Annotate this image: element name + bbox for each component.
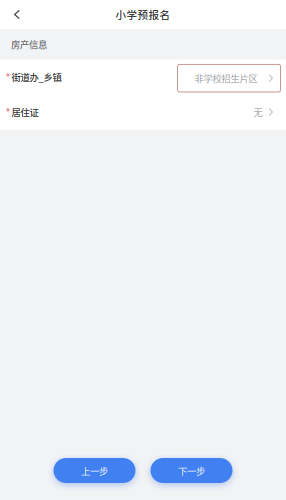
staticText: 小学预报名 — [115, 7, 170, 22]
button[interactable]: Back — [0, 0, 34, 29]
staticText: * — [6, 72, 10, 82]
staticText: 非学校招生片区 — [194, 71, 257, 85]
staticText: 居住证 — [11, 105, 38, 119]
button[interactable]: 下一步 — [150, 458, 232, 483]
staticText: 街道办_乡镇 — [11, 70, 61, 84]
button[interactable]: 上一步 — [53, 458, 135, 483]
button[interactable]: * — [0, 59, 286, 94]
staticText: * — [6, 107, 10, 117]
button[interactable]: * — [0, 94, 286, 129]
staticText: 无 — [254, 105, 263, 119]
staticText: 房产信息 — [11, 37, 47, 51]
staticText: 上一步 — [81, 464, 108, 477]
staticText: 下一步 — [178, 464, 205, 477]
